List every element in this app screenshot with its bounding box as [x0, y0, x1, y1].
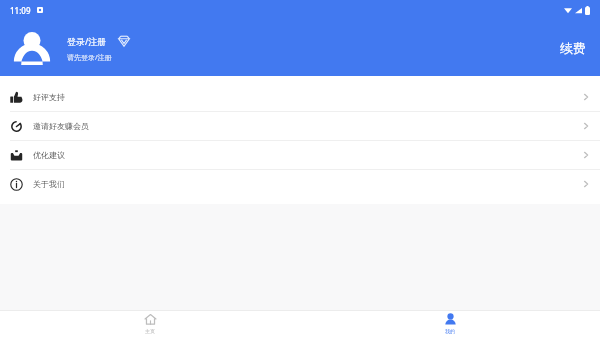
staticText: 登录/注册 — [67, 35, 107, 47]
staticText: 11:09 — [10, 5, 31, 16]
staticText: 关于我们 — [33, 179, 65, 189]
button[interactable]: 关于我们 — [0, 170, 600, 198]
staticText: 我的 — [445, 328, 455, 334]
button[interactable]: 我的 — [300, 310, 600, 337]
staticText: 请先登录/注册 — [67, 53, 112, 63]
button[interactable] — [9, 25, 55, 71]
button[interactable]: 优化建议 — [0, 141, 600, 169]
staticText: 主页 — [145, 328, 155, 334]
staticText: 续费 — [560, 40, 586, 56]
staticText: 优化建议 — [33, 150, 65, 160]
staticText: 好评支持 — [33, 92, 65, 102]
button[interactable]: 续费 — [546, 34, 600, 62]
button[interactable]: 邀请好友赚会员 — [0, 112, 600, 140]
other: VIP badge — [117, 34, 131, 48]
button[interactable]: 登录/注册 — [67, 34, 546, 63]
button[interactable]: 主页 — [0, 310, 300, 337]
staticText: 邀请好友赚会员 — [33, 121, 89, 131]
button[interactable]: 好评支持 — [0, 83, 600, 111]
